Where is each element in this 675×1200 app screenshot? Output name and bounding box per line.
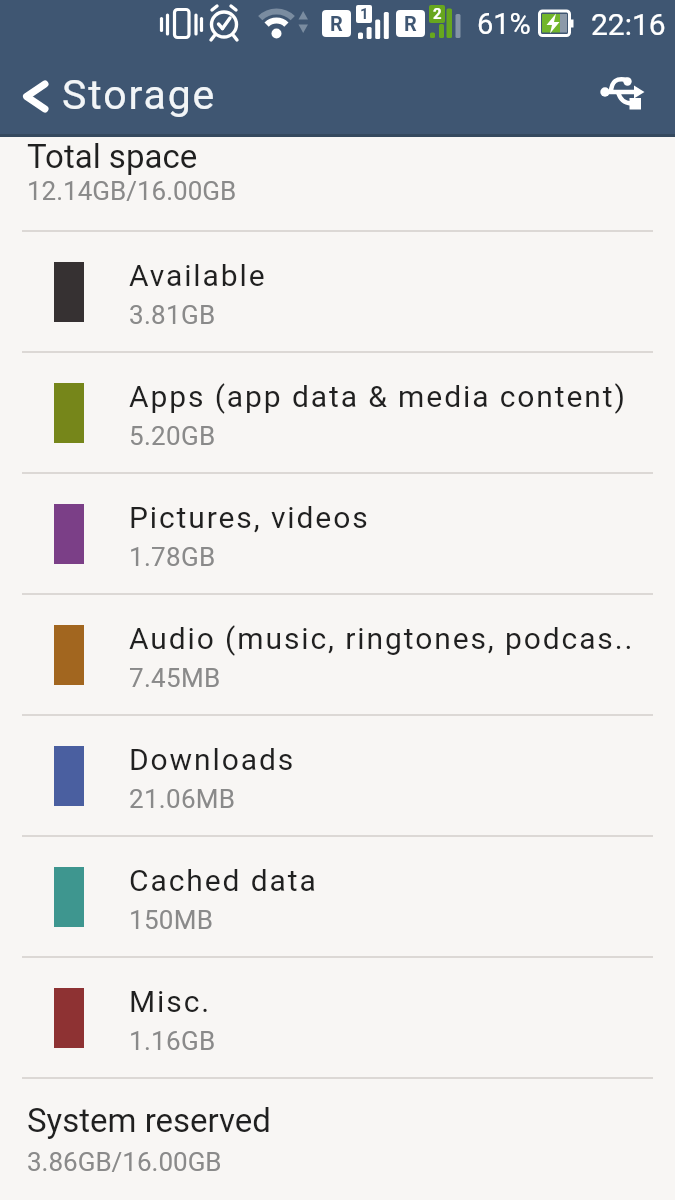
staticText: 5.20GB (129, 421, 216, 451)
staticText: 2 (433, 5, 442, 23)
button[interactable]: Cached data (0, 837, 675, 956)
staticText: Downloads (129, 742, 296, 777)
staticText: Pictures, videos (129, 500, 370, 535)
button[interactable] (585, 58, 665, 128)
staticText: 3.81GB (129, 300, 216, 330)
staticText: R (404, 12, 417, 35)
staticText: Available (129, 258, 267, 293)
staticText: 21.06MB (129, 784, 236, 814)
staticText: Cached data (129, 863, 318, 898)
staticText: 61% (477, 7, 531, 41)
staticText: Audio (music, ringtones, podcas.. (129, 621, 635, 656)
staticText: 150MB (129, 905, 214, 935)
button[interactable]: Downloads (0, 716, 675, 835)
staticText: 1.16GB (129, 1026, 216, 1056)
staticText: 1.78GB (129, 542, 216, 572)
button[interactable]: Apps (app data & media content) (0, 353, 675, 472)
staticText: 1 (360, 5, 369, 23)
staticText: 22:16 (591, 7, 666, 42)
staticText: System reserved (27, 1101, 271, 1140)
staticText: Storage (62, 71, 217, 119)
button[interactable]: Misc. (0, 958, 675, 1077)
staticText: Total space (27, 137, 198, 176)
button[interactable]: Available (0, 232, 675, 351)
staticText: 12.14GB/16.00GB (27, 176, 237, 206)
button[interactable] (12, 70, 60, 118)
staticText: R (330, 12, 343, 35)
button[interactable]: Pictures, videos (0, 474, 675, 593)
staticText: 7.45MB (129, 663, 221, 693)
staticText: Misc. (129, 984, 212, 1019)
staticText: 3.86GB/16.00GB (27, 1147, 222, 1177)
button[interactable]: Audio (music, ringtones, podcas.. (0, 595, 675, 714)
staticText: Apps (app data & media content) (129, 379, 627, 414)
